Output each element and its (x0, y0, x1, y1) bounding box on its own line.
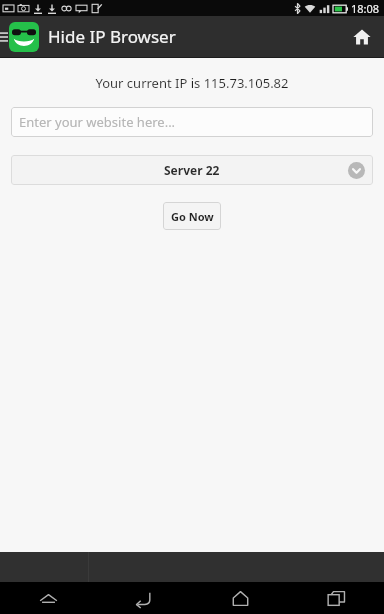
button[interactable]: Back (96, 582, 192, 614)
button[interactable]: Home (340, 16, 384, 57)
staticText: Go Now (171, 209, 214, 224)
button[interactable]: Open navigation drawer (0, 16, 176, 57)
button[interactable]: Server 22 (11, 155, 373, 185)
staticText: Server 22 (164, 162, 220, 178)
button[interactable]: Menu (0, 582, 96, 614)
staticText: Your current IP is 115.73.105.82 (0, 74, 384, 92)
button[interactable]: Enter your website here... (11, 107, 373, 137)
button[interactable]: Go Now (163, 202, 221, 230)
staticText: Hide IP Browser (48, 25, 176, 48)
staticText: 18:08 (351, 1, 380, 16)
button[interactable]: Recent apps (288, 582, 384, 614)
button[interactable]: Home (192, 582, 288, 614)
staticText: Enter your website here... (19, 113, 176, 131)
